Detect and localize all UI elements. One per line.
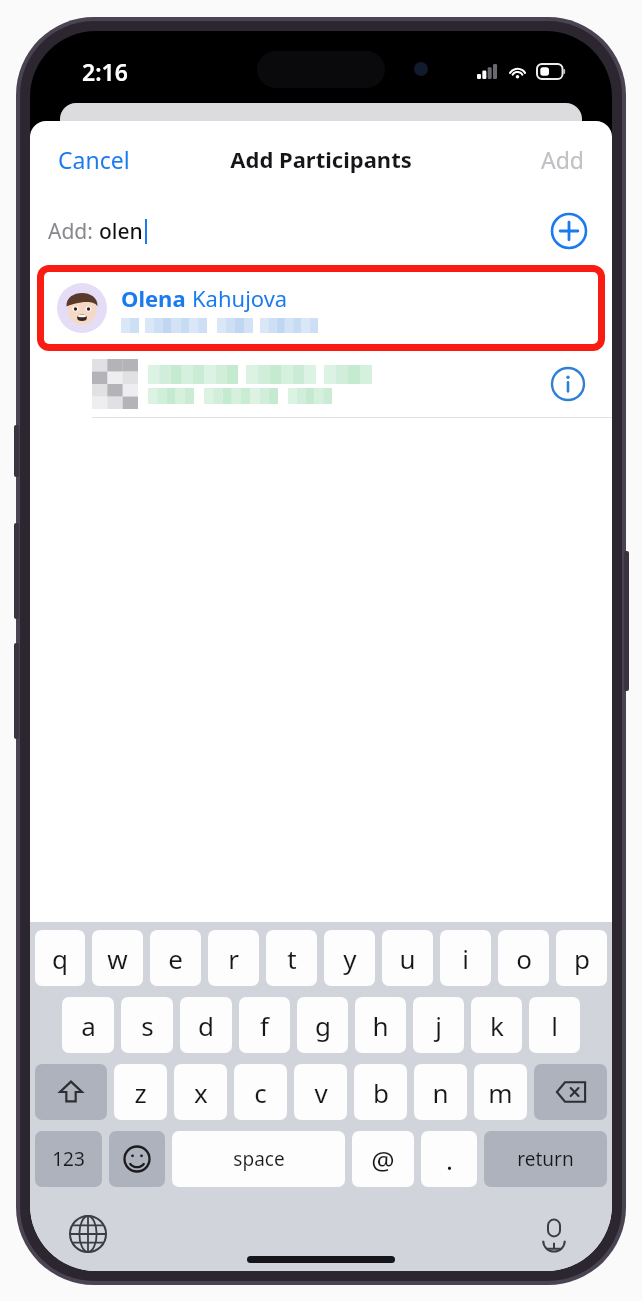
staticText: u [399,941,416,976]
button[interactable]: return [484,1131,607,1187]
staticText: @ [371,1142,395,1177]
staticText: q [52,941,68,976]
button[interactable]: . [421,1131,477,1187]
staticText: o [516,941,532,976]
staticText: l [551,1008,558,1043]
button[interactable]: o [498,930,549,986]
button[interactable]: d [180,997,232,1053]
staticText: p [574,941,590,976]
staticText: z [134,1075,147,1110]
staticText: Add: [48,217,99,246]
staticText: v [314,1075,328,1110]
button[interactable]: Emoji [109,1131,165,1187]
button[interactable]: h [355,997,406,1053]
button[interactable]: z [114,1064,167,1120]
staticText: n [432,1075,449,1110]
button[interactable]: u [382,930,433,986]
staticText: r [228,941,239,976]
button[interactable]: space [172,1131,345,1187]
button[interactable]: g [297,997,348,1053]
button[interactable]: k [471,997,522,1053]
staticText: y [343,941,357,976]
staticText: space [233,1146,285,1172]
button[interactable]: Backspace [534,1064,607,1120]
button[interactable]: t [266,930,317,986]
button[interactable]: w [92,930,143,986]
button[interactable]: Change keyboard language [68,1214,108,1254]
staticText: d [198,1008,214,1043]
button[interactable]: s [121,997,173,1053]
button[interactable]: q [35,930,85,986]
staticText: return [517,1146,574,1172]
staticText: t [287,941,297,976]
button[interactable]: y [324,930,375,986]
staticText: h [372,1008,389,1043]
staticText: k [490,1008,504,1043]
staticText: Add Participants [230,144,412,174]
button[interactable]: e [150,930,201,986]
staticText: Cancel [58,144,130,175]
button[interactable]: m [474,1064,527,1120]
staticText: f [260,1008,269,1043]
button[interactable]: v [294,1064,347,1120]
button[interactable]: c [234,1064,287,1120]
staticText: Add [541,144,584,175]
staticText: e [168,941,183,976]
button[interactable]: Dictation [534,1214,574,1254]
button[interactable]: More info [30,351,612,417]
button[interactable]: n [414,1064,467,1120]
staticText: . [446,1142,453,1177]
button[interactable]: i [440,930,491,986]
staticText: Kahujova [192,283,288,313]
staticText: g [315,1008,331,1043]
staticText: 123 [52,1146,85,1172]
button[interactable]: 123 [35,1131,102,1187]
staticText: i [462,941,469,976]
staticText: j [435,1008,442,1043]
staticText: a [81,1008,96,1043]
button[interactable]: Add contact [550,212,588,250]
staticText: s [141,1008,154,1043]
staticText: c [254,1075,267,1110]
button[interactable]: More info [550,366,586,402]
button[interactable]: @ [352,1131,414,1187]
staticText: 2:16 [82,56,128,87]
button[interactable]: f [239,997,290,1053]
button[interactable]: Shift [35,1064,107,1120]
staticText: x [194,1075,208,1110]
button[interactable]: Olena [44,272,598,344]
button[interactable]: x [174,1064,227,1120]
button[interactable]: b [354,1064,407,1120]
staticText: olen [99,217,143,246]
button[interactable]: a [62,997,114,1053]
button[interactable]: Add [525,134,612,185]
button[interactable]: l [529,997,580,1053]
button[interactable]: Cancel [30,134,146,185]
button[interactable]: r [208,930,259,986]
staticText: b [373,1075,389,1110]
staticText: w [107,941,128,976]
staticText: m [488,1075,513,1110]
staticText: Olena [121,283,186,313]
button[interactable]: j [413,997,464,1053]
button[interactable]: p [556,930,607,986]
